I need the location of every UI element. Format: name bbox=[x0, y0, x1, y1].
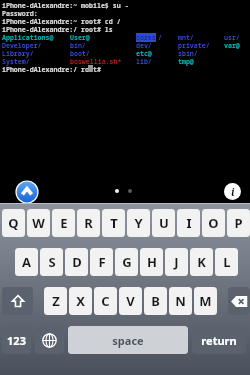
staticText: 123 bbox=[7, 333, 26, 348]
staticText: I bbox=[186, 214, 192, 232]
button[interactable]: E bbox=[52, 209, 75, 237]
staticText: Applications@ bbox=[2, 33, 54, 42]
button[interactable]: B bbox=[144, 287, 167, 315]
staticText: O bbox=[208, 214, 219, 232]
staticText: private/ bbox=[178, 41, 210, 50]
button[interactable]: M bbox=[194, 287, 217, 315]
staticText: C bbox=[101, 292, 110, 310]
button[interactable]: 123 bbox=[2, 326, 31, 354]
button[interactable]: D bbox=[65, 248, 88, 276]
staticText: iPhone-dAlexandre:/ root# bbox=[2, 65, 101, 74]
button[interactable]: H bbox=[140, 248, 163, 276]
button[interactable]: Info bbox=[224, 183, 241, 200]
button[interactable]: Shift bbox=[2, 287, 33, 315]
button[interactable]: L bbox=[215, 248, 238, 276]
button[interactable]: N bbox=[169, 287, 192, 315]
staticText: dev/ bbox=[136, 41, 152, 50]
staticText: N bbox=[175, 292, 186, 310]
button[interactable]: Scroll up bbox=[16, 181, 38, 203]
staticText: tmp@ bbox=[178, 57, 194, 66]
staticText: Password: bbox=[2, 9, 38, 18]
button[interactable]: Change keyboard bbox=[35, 326, 64, 354]
staticText: M bbox=[199, 292, 212, 310]
staticText: boot/ bbox=[70, 49, 90, 58]
staticText: W bbox=[32, 214, 45, 232]
button[interactable]: O bbox=[202, 209, 225, 237]
button[interactable]: C bbox=[94, 287, 117, 315]
staticText: etc@ bbox=[136, 49, 152, 58]
button[interactable]: J bbox=[165, 248, 188, 276]
staticText: iPhone-dAlexandre:~ mobile$ su - bbox=[2, 1, 129, 10]
button[interactable]: P bbox=[227, 209, 250, 237]
staticText: S bbox=[48, 253, 56, 271]
button[interactable]: W bbox=[27, 209, 50, 237]
staticText: V bbox=[126, 292, 135, 310]
staticText: Q bbox=[8, 214, 19, 232]
staticText: space bbox=[112, 333, 144, 348]
button[interactable]: I bbox=[177, 209, 200, 237]
staticText: System/ bbox=[2, 57, 30, 66]
staticText: T bbox=[110, 214, 118, 232]
staticText: E bbox=[60, 214, 68, 232]
staticText: return bbox=[201, 333, 237, 348]
staticText: boswellia.sh* bbox=[70, 57, 122, 66]
staticText: Developer/ bbox=[2, 41, 42, 50]
staticText: Z bbox=[52, 292, 60, 310]
staticText: H bbox=[147, 253, 157, 271]
staticText: P bbox=[234, 214, 243, 232]
staticText: F bbox=[98, 253, 106, 271]
button[interactable]: Q bbox=[2, 209, 25, 237]
staticText: Y bbox=[134, 214, 143, 232]
staticText: U bbox=[159, 214, 169, 232]
staticText: i bbox=[231, 185, 235, 199]
staticText: mnt/ bbox=[178, 33, 194, 42]
button[interactable]: S bbox=[40, 248, 63, 276]
staticText: A bbox=[22, 253, 31, 271]
staticText: usr/ bbox=[224, 33, 240, 42]
staticText: X bbox=[76, 292, 85, 310]
button[interactable]: K bbox=[190, 248, 213, 276]
staticText: iPhone-dAlexandre:/ root# ls bbox=[2, 25, 113, 34]
staticText: R bbox=[84, 214, 93, 232]
button[interactable]: space bbox=[68, 326, 188, 354]
staticText: D bbox=[72, 253, 82, 271]
staticText: bin/ bbox=[70, 41, 86, 50]
staticText: K bbox=[197, 253, 206, 271]
staticText: G bbox=[122, 253, 132, 271]
button[interactable]: A bbox=[15, 248, 38, 276]
staticText: cores bbox=[136, 33, 156, 42]
button[interactable]: R bbox=[77, 209, 100, 237]
button[interactable]: G bbox=[115, 248, 138, 276]
button[interactable]: F bbox=[90, 248, 113, 276]
staticText: iPhone-dAlexandre:~ root# cd / bbox=[2, 17, 121, 26]
button[interactable]: Backspace bbox=[228, 287, 250, 315]
button[interactable]: Y bbox=[127, 209, 150, 237]
button[interactable]: V bbox=[119, 287, 142, 315]
staticText: J bbox=[174, 253, 179, 271]
staticText: Library/ bbox=[2, 49, 34, 58]
button[interactable]: Z bbox=[44, 287, 67, 315]
staticText: / bbox=[158, 33, 162, 42]
staticText: User@ bbox=[70, 33, 90, 42]
staticText: var@ bbox=[224, 41, 240, 50]
button[interactable]: T bbox=[102, 209, 125, 237]
button[interactable]: return bbox=[192, 326, 246, 354]
staticText: B bbox=[151, 292, 160, 310]
button[interactable]: U bbox=[152, 209, 175, 237]
button[interactable]: X bbox=[69, 287, 92, 315]
staticText: sbin/ bbox=[178, 49, 198, 58]
staticText: lib/ bbox=[136, 57, 152, 66]
staticText: L bbox=[223, 253, 231, 271]
